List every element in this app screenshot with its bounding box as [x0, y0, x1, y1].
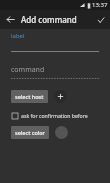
staticText: Add command [21, 14, 77, 25]
staticText: select host [15, 93, 44, 100]
button[interactable]: Add host [54, 90, 67, 103]
staticText: command [11, 65, 45, 75]
staticText: select color [15, 129, 45, 136]
button[interactable]: Current color [55, 126, 68, 139]
button[interactable]: Save command [94, 13, 107, 26]
button[interactable]: ask for confirmation before execute [12, 112, 104, 119]
button[interactable]: command [11, 65, 99, 79]
button[interactable]: Back [4, 13, 17, 26]
staticText: label [11, 32, 25, 40]
staticText: 13:37 [92, 1, 108, 9]
staticText: ask for confirmation before execute [21, 112, 104, 119]
button[interactable]: select color [11, 126, 49, 139]
button[interactable]: select host [11, 90, 48, 103]
button[interactable]: label [11, 32, 99, 52]
